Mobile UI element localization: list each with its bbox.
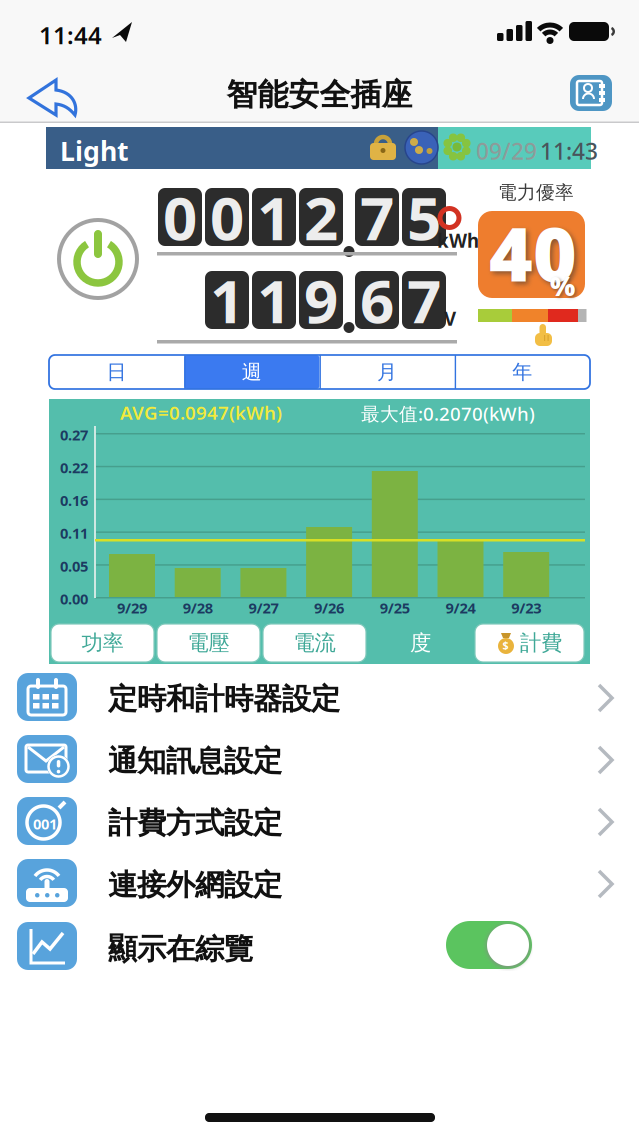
staticText: 智能安全插座 <box>226 76 412 114</box>
staticText: 電流 <box>293 630 335 656</box>
staticText: 0.11 <box>60 523 88 543</box>
staticText: 40 <box>489 203 577 302</box>
button[interactable]: 顯示在綜覽 <box>0 921 639 979</box>
button[interactable]: 月 <box>319 355 455 389</box>
button[interactable]: 定時和計時器設定 <box>0 673 639 723</box>
staticText: 2 <box>304 177 338 257</box>
button[interactable]: 日 <box>49 355 184 389</box>
staticText: 度 <box>410 630 431 656</box>
staticText: 電壓 <box>187 630 229 656</box>
staticText: 功率 <box>81 630 123 656</box>
staticText: 9/23 <box>511 598 541 617</box>
staticText: 9/27 <box>248 598 278 617</box>
staticText: 連接外網設定 <box>108 867 282 903</box>
staticText: 11:44 <box>39 19 102 51</box>
button[interactable]: 功率 <box>51 624 154 662</box>
staticText: 0 <box>210 177 244 257</box>
staticText: 0.05 <box>60 556 88 576</box>
button[interactable]: 通知訊息設定 <box>0 735 639 785</box>
staticText: 定時和計時器設定 <box>108 681 340 717</box>
staticText: AVG=0.0947(kWh) <box>120 400 282 425</box>
staticText: 001 <box>33 814 57 833</box>
staticText: 1 <box>257 260 291 340</box>
staticText: % <box>550 268 575 303</box>
staticText: Light <box>60 133 129 168</box>
staticText: 電力優率 <box>498 181 574 204</box>
staticText: 7 <box>360 177 394 257</box>
staticText: 9/28 <box>183 598 213 617</box>
staticText: 月 <box>377 360 397 384</box>
staticText: 9 <box>304 260 338 340</box>
staticText: $ <box>502 638 508 652</box>
staticText: 9/26 <box>314 598 344 617</box>
staticText: 9/24 <box>445 598 475 617</box>
button[interactable]: Power <box>59 220 137 298</box>
staticText: 日 <box>107 360 127 384</box>
staticText: 計費方式設定 <box>108 805 282 841</box>
button[interactable]: 連接外網設定 <box>0 859 639 909</box>
staticText: 9/25 <box>380 598 410 617</box>
button[interactable]: 001 <box>0 797 639 847</box>
staticText: 年 <box>512 360 532 384</box>
staticText: 09/29 <box>476 136 537 166</box>
staticText: kWh <box>437 228 479 253</box>
staticText: V <box>444 306 456 331</box>
button[interactable]: 年 <box>455 355 590 389</box>
button[interactable]: 度 <box>369 624 472 662</box>
staticText: 計費 <box>520 630 562 656</box>
staticText: 0.16 <box>60 491 88 510</box>
button[interactable]: 電流 <box>263 624 366 662</box>
staticText: 1 <box>257 177 291 257</box>
staticText: 0.00 <box>60 589 88 608</box>
staticText: 7 <box>407 260 441 340</box>
staticText: 週 <box>242 360 262 384</box>
button[interactable]: 電壓 <box>157 624 260 662</box>
staticText: 0 <box>163 177 197 257</box>
staticText: 6 <box>360 260 394 340</box>
staticText: 11:43 <box>540 136 598 166</box>
staticText: 通知訊息設定 <box>108 743 282 779</box>
staticText: 0.22 <box>60 458 88 477</box>
button[interactable]: Back <box>25 74 85 118</box>
button[interactable]: $ <box>475 624 584 662</box>
staticText: 最大值:0.2070(kWh) <box>361 401 535 426</box>
button[interactable]: Contacts <box>570 75 612 111</box>
button[interactable]: 週 <box>184 355 319 389</box>
staticText: 1 <box>210 260 244 340</box>
staticText: 5 <box>407 177 441 257</box>
staticText: 顯示在綜覽 <box>108 931 253 967</box>
staticText: 0.27 <box>60 425 88 444</box>
staticText: 9/29 <box>117 598 147 617</box>
